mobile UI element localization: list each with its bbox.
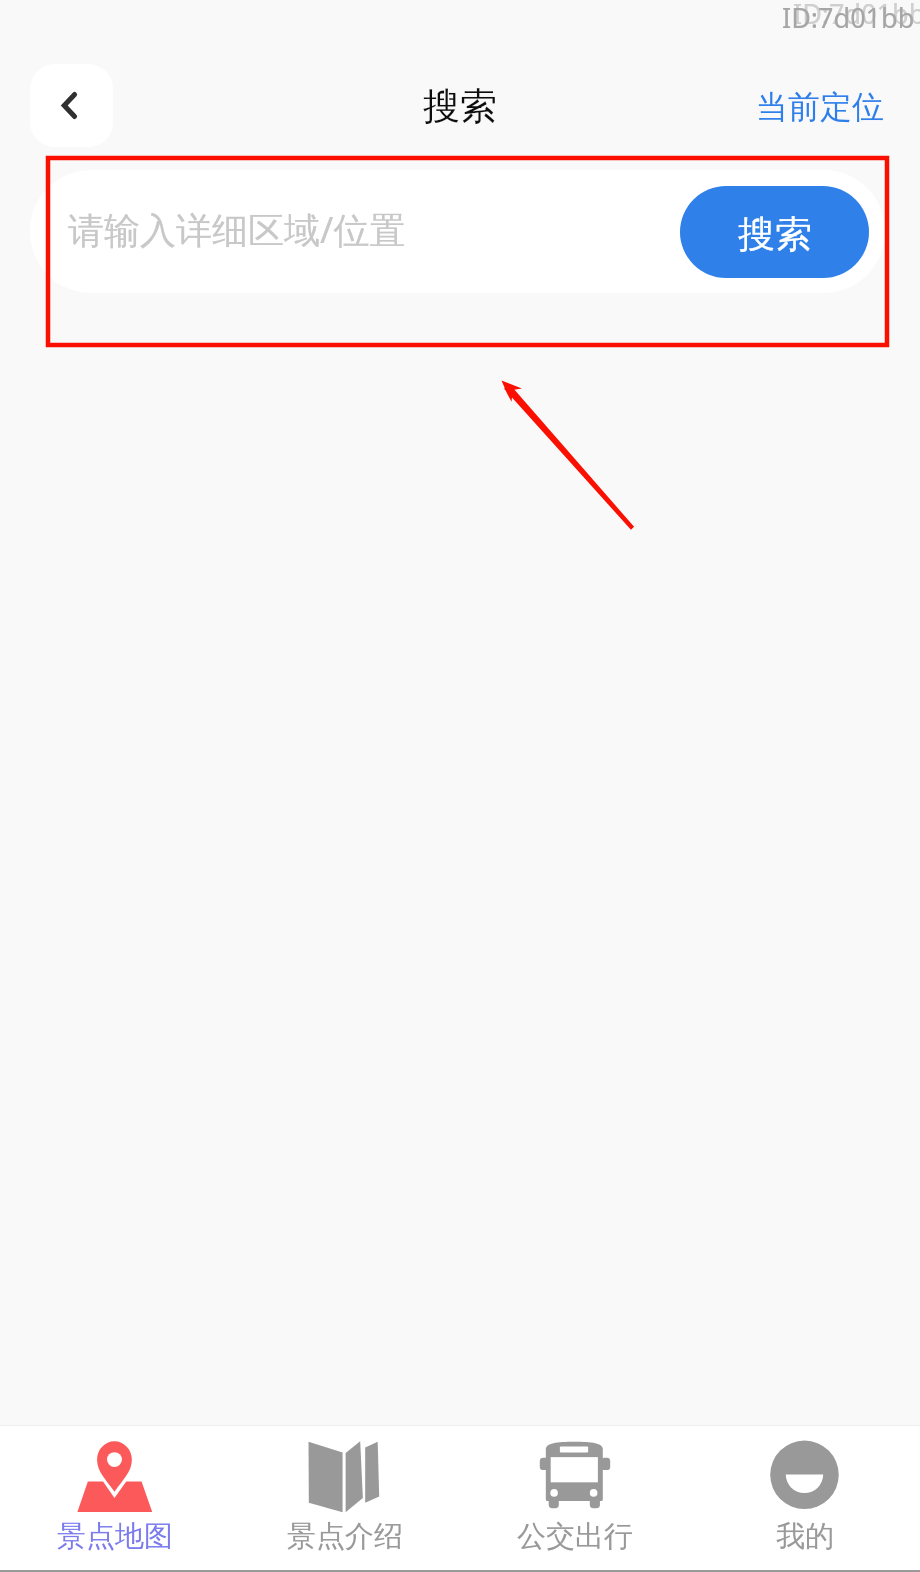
- staticText: 景点介绍: [287, 1518, 403, 1555]
- staticText: 请输入详细区域/位置: [68, 205, 406, 254]
- button[interactable]: 公交出行: [460, 1426, 690, 1570]
- button[interactable]: 搜索: [680, 186, 869, 278]
- button[interactable]: Back: [30, 64, 113, 147]
- staticText: ID:7d01bb: [793, 0, 920, 32]
- staticText: 景点地图: [57, 1518, 173, 1555]
- staticText: 当前定位: [756, 87, 884, 127]
- staticText: 我的: [776, 1518, 834, 1555]
- button[interactable]: 请输入详细区域/位置: [30, 170, 670, 293]
- button[interactable]: 我的: [690, 1426, 920, 1570]
- button[interactable]: 景点地图: [0, 1426, 230, 1570]
- staticText: 搜索: [738, 211, 812, 258]
- button[interactable]: 景点介绍: [230, 1426, 460, 1570]
- staticText: 公交出行: [517, 1518, 633, 1555]
- staticText: 搜索: [423, 83, 497, 130]
- staticText: ID:7d01bb: [782, 0, 915, 36]
- button[interactable]: 当前定位: [756, 87, 884, 127]
